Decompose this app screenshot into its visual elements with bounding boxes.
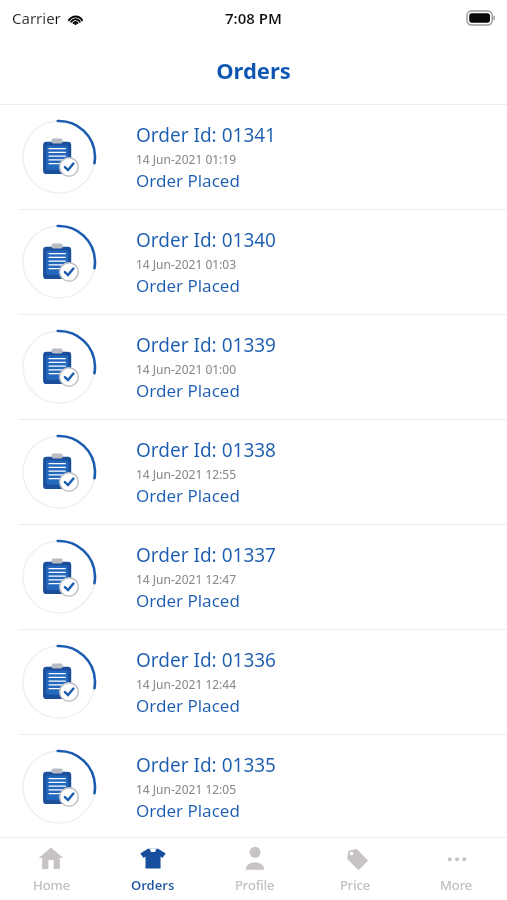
staticText: Order Id: 01340 bbox=[136, 227, 276, 253]
staticText: 14 Jun-2021 12:47 bbox=[136, 571, 237, 587]
staticText: 14 Jun-2021 01:03 bbox=[136, 256, 237, 272]
staticText: Order Id: 01338 bbox=[136, 437, 276, 463]
button[interactable]: Price bbox=[305, 838, 406, 894]
button[interactable]: Order Id: 01339 bbox=[0, 315, 507, 419]
button[interactable]: Order Id: 01340 bbox=[0, 210, 507, 314]
button[interactable]: Profile bbox=[204, 838, 305, 894]
button[interactable]: Home bbox=[0, 838, 102, 894]
staticText: 14 Jun-2021 12:44 bbox=[136, 676, 237, 692]
staticText: 7:08 PM bbox=[225, 8, 282, 28]
staticText: Order Placed bbox=[136, 484, 240, 507]
button[interactable]: Order Id: 01341 bbox=[0, 105, 507, 209]
staticText: 14 Jun-2021 01:00 bbox=[136, 361, 237, 377]
staticText: Price bbox=[340, 876, 371, 894]
staticText: 14 Jun-2021 01:19 bbox=[136, 151, 237, 167]
staticText: Order Placed bbox=[136, 694, 240, 717]
staticText: Order Placed bbox=[136, 169, 240, 192]
staticText: Order Id: 01341 bbox=[136, 122, 276, 148]
button[interactable]: More bbox=[406, 838, 507, 894]
staticText: Order Placed bbox=[136, 799, 240, 822]
staticText: Profile bbox=[235, 876, 275, 894]
staticText: 14 Jun-2021 12:55 bbox=[136, 466, 237, 482]
button[interactable]: Orders bbox=[102, 838, 204, 894]
staticText: 14 Jun-2021 12:05 bbox=[136, 781, 237, 797]
staticText: Order Id: 01339 bbox=[136, 332, 276, 358]
staticText: Home bbox=[33, 876, 70, 894]
button[interactable]: Order Id: 01337 bbox=[0, 525, 507, 629]
button[interactable]: Order Id: 01335 bbox=[0, 735, 507, 839]
staticText: Orders bbox=[131, 876, 175, 894]
staticText: Orders bbox=[216, 55, 291, 85]
staticText: Order Placed bbox=[136, 589, 240, 612]
staticText: Order Placed bbox=[136, 379, 240, 402]
staticText: Order Id: 01337 bbox=[136, 542, 276, 568]
staticText: More bbox=[440, 876, 473, 894]
staticText: Order Id: 01336 bbox=[136, 647, 276, 673]
button[interactable]: Order Id: 01338 bbox=[0, 420, 507, 524]
staticText: Order Placed bbox=[136, 274, 240, 297]
staticText: Order Id: 01335 bbox=[136, 752, 276, 778]
staticText: Carrier bbox=[12, 8, 61, 28]
button[interactable]: Order Id: 01336 bbox=[0, 630, 507, 734]
